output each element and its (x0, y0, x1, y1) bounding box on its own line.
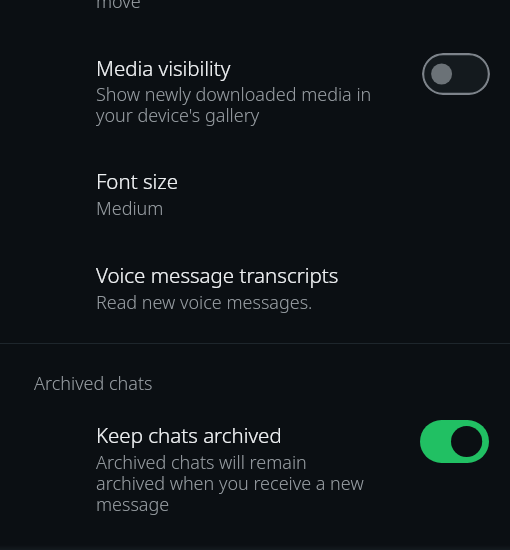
staticText: message (96, 492, 170, 517)
staticText: Read new voice messages. (96, 290, 313, 315)
button[interactable] (0, 137, 510, 230)
button[interactable] (0, 0, 510, 22)
staticText: Font size (96, 167, 179, 195)
staticText: archived when you receive a new (96, 471, 364, 496)
button[interactable] (0, 230, 510, 323)
staticText: move (96, 0, 141, 14)
staticText: Medium (96, 196, 164, 221)
button[interactable]: Media visibility switch, off (422, 53, 490, 95)
staticText: Voice message transcripts (96, 261, 339, 289)
button[interactable] (0, 400, 510, 528)
button[interactable]: Keep chats archived switch, on (420, 420, 489, 463)
staticText: Show newly downloaded media in (96, 82, 372, 107)
staticText: Archived chats (34, 371, 153, 396)
staticText: your device's gallery (96, 103, 260, 128)
staticText: Media visibility (96, 54, 231, 82)
button[interactable] (0, 22, 510, 137)
staticText: Keep chats archived (96, 421, 282, 449)
staticText: Archived chats will remain (96, 450, 307, 475)
